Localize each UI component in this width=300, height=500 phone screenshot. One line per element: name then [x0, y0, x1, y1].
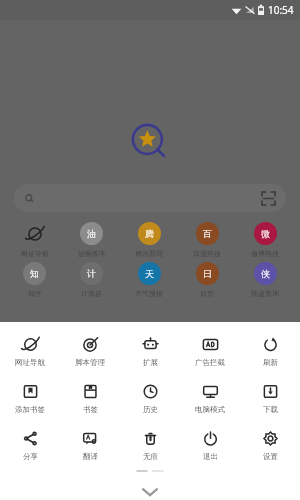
button[interactable]: 刷新	[240, 334, 300, 369]
staticText: 下载	[263, 405, 278, 414]
button[interactable]: 广告拦截	[180, 334, 240, 369]
staticText: 百度热搜	[193, 249, 221, 258]
staticText: 天	[145, 268, 154, 279]
button[interactable]: 侠	[236, 262, 294, 298]
button[interactable]: 知	[6, 262, 63, 298]
staticText: 知乎	[28, 289, 42, 298]
staticText: 历史	[143, 405, 158, 414]
staticText: 书签	[83, 405, 98, 414]
staticText: 脚本管理	[75, 358, 105, 367]
staticText: 10:54	[268, 3, 294, 17]
button[interactable]: 脚本管理	[60, 334, 120, 369]
button[interactable]: 分享	[0, 428, 60, 463]
button[interactable]: 设置	[240, 428, 300, 463]
button[interactable]: 计	[63, 262, 120, 298]
button[interactable]: 历史	[120, 381, 180, 416]
staticText: 腾讯新闻	[135, 249, 163, 258]
staticText: 快递查询	[251, 289, 279, 298]
button[interactable]: 添加书签	[0, 381, 60, 416]
staticText: 知	[30, 268, 39, 279]
other: Scan QR code	[262, 192, 275, 205]
staticText: 广告拦截	[195, 358, 225, 367]
staticText: 百	[203, 228, 212, 239]
button[interactable]: 书签	[60, 381, 120, 416]
staticText: 网址导航	[15, 358, 45, 367]
staticText: 电脑模式	[195, 405, 225, 414]
button[interactable]: 翻译	[60, 428, 120, 463]
staticText: 微博热搜	[251, 249, 279, 258]
button[interactable]: 扩展	[120, 334, 180, 369]
button[interactable]: 油	[63, 222, 120, 258]
staticText: 日	[203, 268, 212, 279]
button[interactable]: 百	[178, 222, 236, 258]
button[interactable]: 无痕	[120, 428, 180, 463]
button[interactable]: 天	[120, 262, 178, 298]
button[interactable]: 下载	[240, 381, 300, 416]
staticText: 无痕	[143, 452, 158, 461]
staticText: 计算器	[81, 289, 102, 298]
staticText: 网址导航	[21, 249, 49, 258]
staticText: 油	[87, 228, 96, 239]
button[interactable]: 微	[236, 222, 294, 258]
other: Search	[25, 194, 34, 203]
staticText: 添加书签	[15, 405, 45, 414]
button[interactable]: 电脑模式	[180, 381, 240, 416]
button[interactable]: Collapse menu	[0, 483, 300, 500]
staticText: 天气预报	[135, 289, 163, 298]
button[interactable]: 腾	[120, 222, 178, 258]
staticText: 计	[87, 268, 96, 279]
staticText: 分享	[23, 452, 38, 461]
button[interactable]: 退出	[180, 428, 240, 463]
staticText: 刷新	[263, 358, 278, 367]
staticText: 退出	[203, 452, 218, 461]
staticText: 日历	[200, 289, 214, 298]
staticText: 翻译	[83, 452, 98, 461]
button[interactable]: 网址导航	[6, 222, 63, 258]
staticText: 侠	[261, 268, 270, 279]
button[interactable]: 网址导航	[0, 334, 60, 369]
staticText: 微	[261, 228, 270, 239]
staticText: 设置	[263, 452, 278, 461]
button[interactable]: 日	[178, 262, 236, 298]
staticText: 油猴脚本	[78, 249, 106, 258]
staticText: 扩展	[143, 358, 158, 367]
staticText: 腾	[145, 228, 154, 239]
button[interactable]: Search	[14, 184, 286, 212]
